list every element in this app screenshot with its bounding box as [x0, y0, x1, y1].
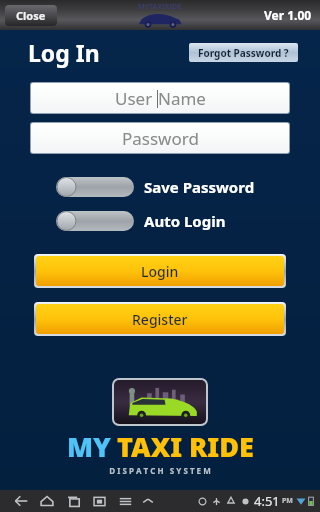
button[interactable]: Home: [34, 491, 60, 511]
staticText: Login: [141, 262, 179, 281]
staticText: MYTAXIRIDE: [138, 2, 182, 12]
staticText: Name: [158, 87, 206, 110]
button[interactable]: Password: [31, 123, 289, 153]
staticText: TAXI RIDE: [117, 428, 254, 465]
staticText: Register: [132, 310, 188, 329]
button[interactable]: Back: [8, 491, 34, 511]
staticText: PM: [282, 496, 293, 506]
staticText: Password: [122, 127, 199, 150]
staticText: Forgot Password ?: [198, 46, 289, 60]
staticText: D I S P A T C H S Y S T E M: [109, 465, 211, 476]
button[interactable]: Recent apps: [60, 491, 86, 511]
staticText: Save Password: [144, 177, 255, 197]
button[interactable]: Save Password: [56, 176, 320, 198]
staticText: Log In: [28, 37, 100, 68]
staticText: MY: [67, 428, 112, 465]
button[interactable]: Forgot Password ?: [198, 43, 289, 62]
button[interactable]: Menu: [112, 491, 138, 511]
staticText: Ver 1.00: [264, 7, 312, 23]
staticText: Auto Login: [144, 211, 226, 231]
button[interactable]: User: [31, 83, 289, 113]
button[interactable]: Full screen: [86, 491, 112, 511]
button[interactable]: Register: [36, 304, 284, 334]
staticText: Close: [16, 8, 46, 23]
button[interactable]: Login: [36, 256, 284, 286]
staticText: 4:51: [254, 492, 280, 510]
button[interactable]: Auto Login: [56, 210, 320, 232]
staticText: User: [115, 87, 157, 110]
button[interactable]: Close: [5, 5, 57, 26]
